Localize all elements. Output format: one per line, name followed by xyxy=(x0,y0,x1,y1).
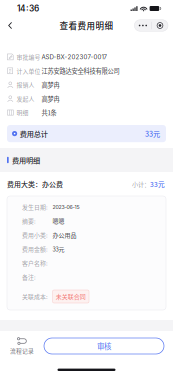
staticText: 嗯嗯 xyxy=(53,217,65,225)
staticText: 小计： xyxy=(132,180,150,188)
staticText: 报销人 xyxy=(16,80,34,89)
staticText: 摘要: xyxy=(22,217,36,225)
staticText: 费用明细 xyxy=(12,155,40,165)
button[interactable]: 审核 xyxy=(44,338,164,354)
staticText: ASD-BX-202307-0017 xyxy=(41,53,106,61)
staticText: 审批编号 xyxy=(16,53,40,61)
staticText: 发起人 xyxy=(16,94,34,103)
staticText: 33元 xyxy=(145,128,160,139)
staticText: 关联成本: xyxy=(22,292,48,301)
staticText: 未关联合同 xyxy=(56,292,86,301)
staticText: 发生日期: xyxy=(22,203,48,211)
staticText: 33元 xyxy=(53,245,65,253)
staticText: 备注: xyxy=(22,273,36,281)
staticText: 流程记录 xyxy=(10,346,34,355)
staticText: 费用总计 xyxy=(20,128,48,139)
staticText: 费用小类: xyxy=(22,231,48,239)
staticText: 高梦冉 xyxy=(41,80,59,89)
staticText: 明细 xyxy=(16,108,28,117)
staticText: 33元 xyxy=(150,179,165,189)
staticText: 高梦冉 xyxy=(41,94,59,103)
staticText: 14:36 xyxy=(17,3,39,13)
staticText: 2023-06-15 xyxy=(53,204,80,210)
button[interactable]: More xyxy=(134,20,151,31)
button[interactable]: 流程记录 xyxy=(0,333,44,359)
button[interactable]: Back xyxy=(3,18,17,33)
staticText: 办公用品 xyxy=(53,231,77,239)
staticText: 查看费用明细 xyxy=(59,19,113,32)
staticText: 共1条 xyxy=(41,108,56,117)
button[interactable]: Close xyxy=(152,20,168,31)
staticText: 计入单位 xyxy=(16,67,40,75)
staticText: 客户名称: xyxy=(22,259,48,267)
staticText: 审核 xyxy=(97,341,111,351)
staticText: 江苏安路达安全科技有限公司 xyxy=(41,66,119,75)
staticText: 费用金额: xyxy=(22,245,48,253)
staticText: 费用大类：办公费 xyxy=(7,179,63,189)
